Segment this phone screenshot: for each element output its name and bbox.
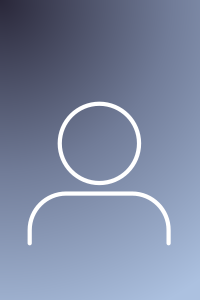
button[interactable]: Profile photo <box>0 0 200 300</box>
